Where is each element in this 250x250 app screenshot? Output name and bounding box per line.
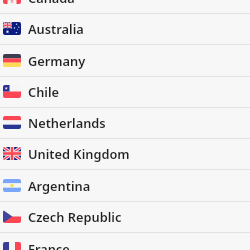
staticText: Canada [28,0,75,6]
button[interactable]: France [0,232,250,250]
button[interactable]: United Kingdom [0,138,250,169]
button[interactable]: Chile [0,76,250,107]
staticText: Australia [28,20,84,37]
button[interactable]: Czech Republic [0,201,250,232]
button[interactable]: Australia [0,13,250,44]
staticText: Argentina [28,177,91,194]
staticText: United Kingdom [28,145,130,162]
button[interactable]: Netherlands [0,107,250,138]
staticText: Netherlands [28,114,106,131]
staticText: France [28,240,70,250]
button[interactable]: Germany [0,44,250,76]
staticText: Chile [28,83,60,100]
button[interactable]: Argentina [0,169,250,201]
button[interactable]: Canada [0,0,250,13]
staticText: Germany [28,52,86,69]
staticText: Czech Republic [28,208,122,225]
